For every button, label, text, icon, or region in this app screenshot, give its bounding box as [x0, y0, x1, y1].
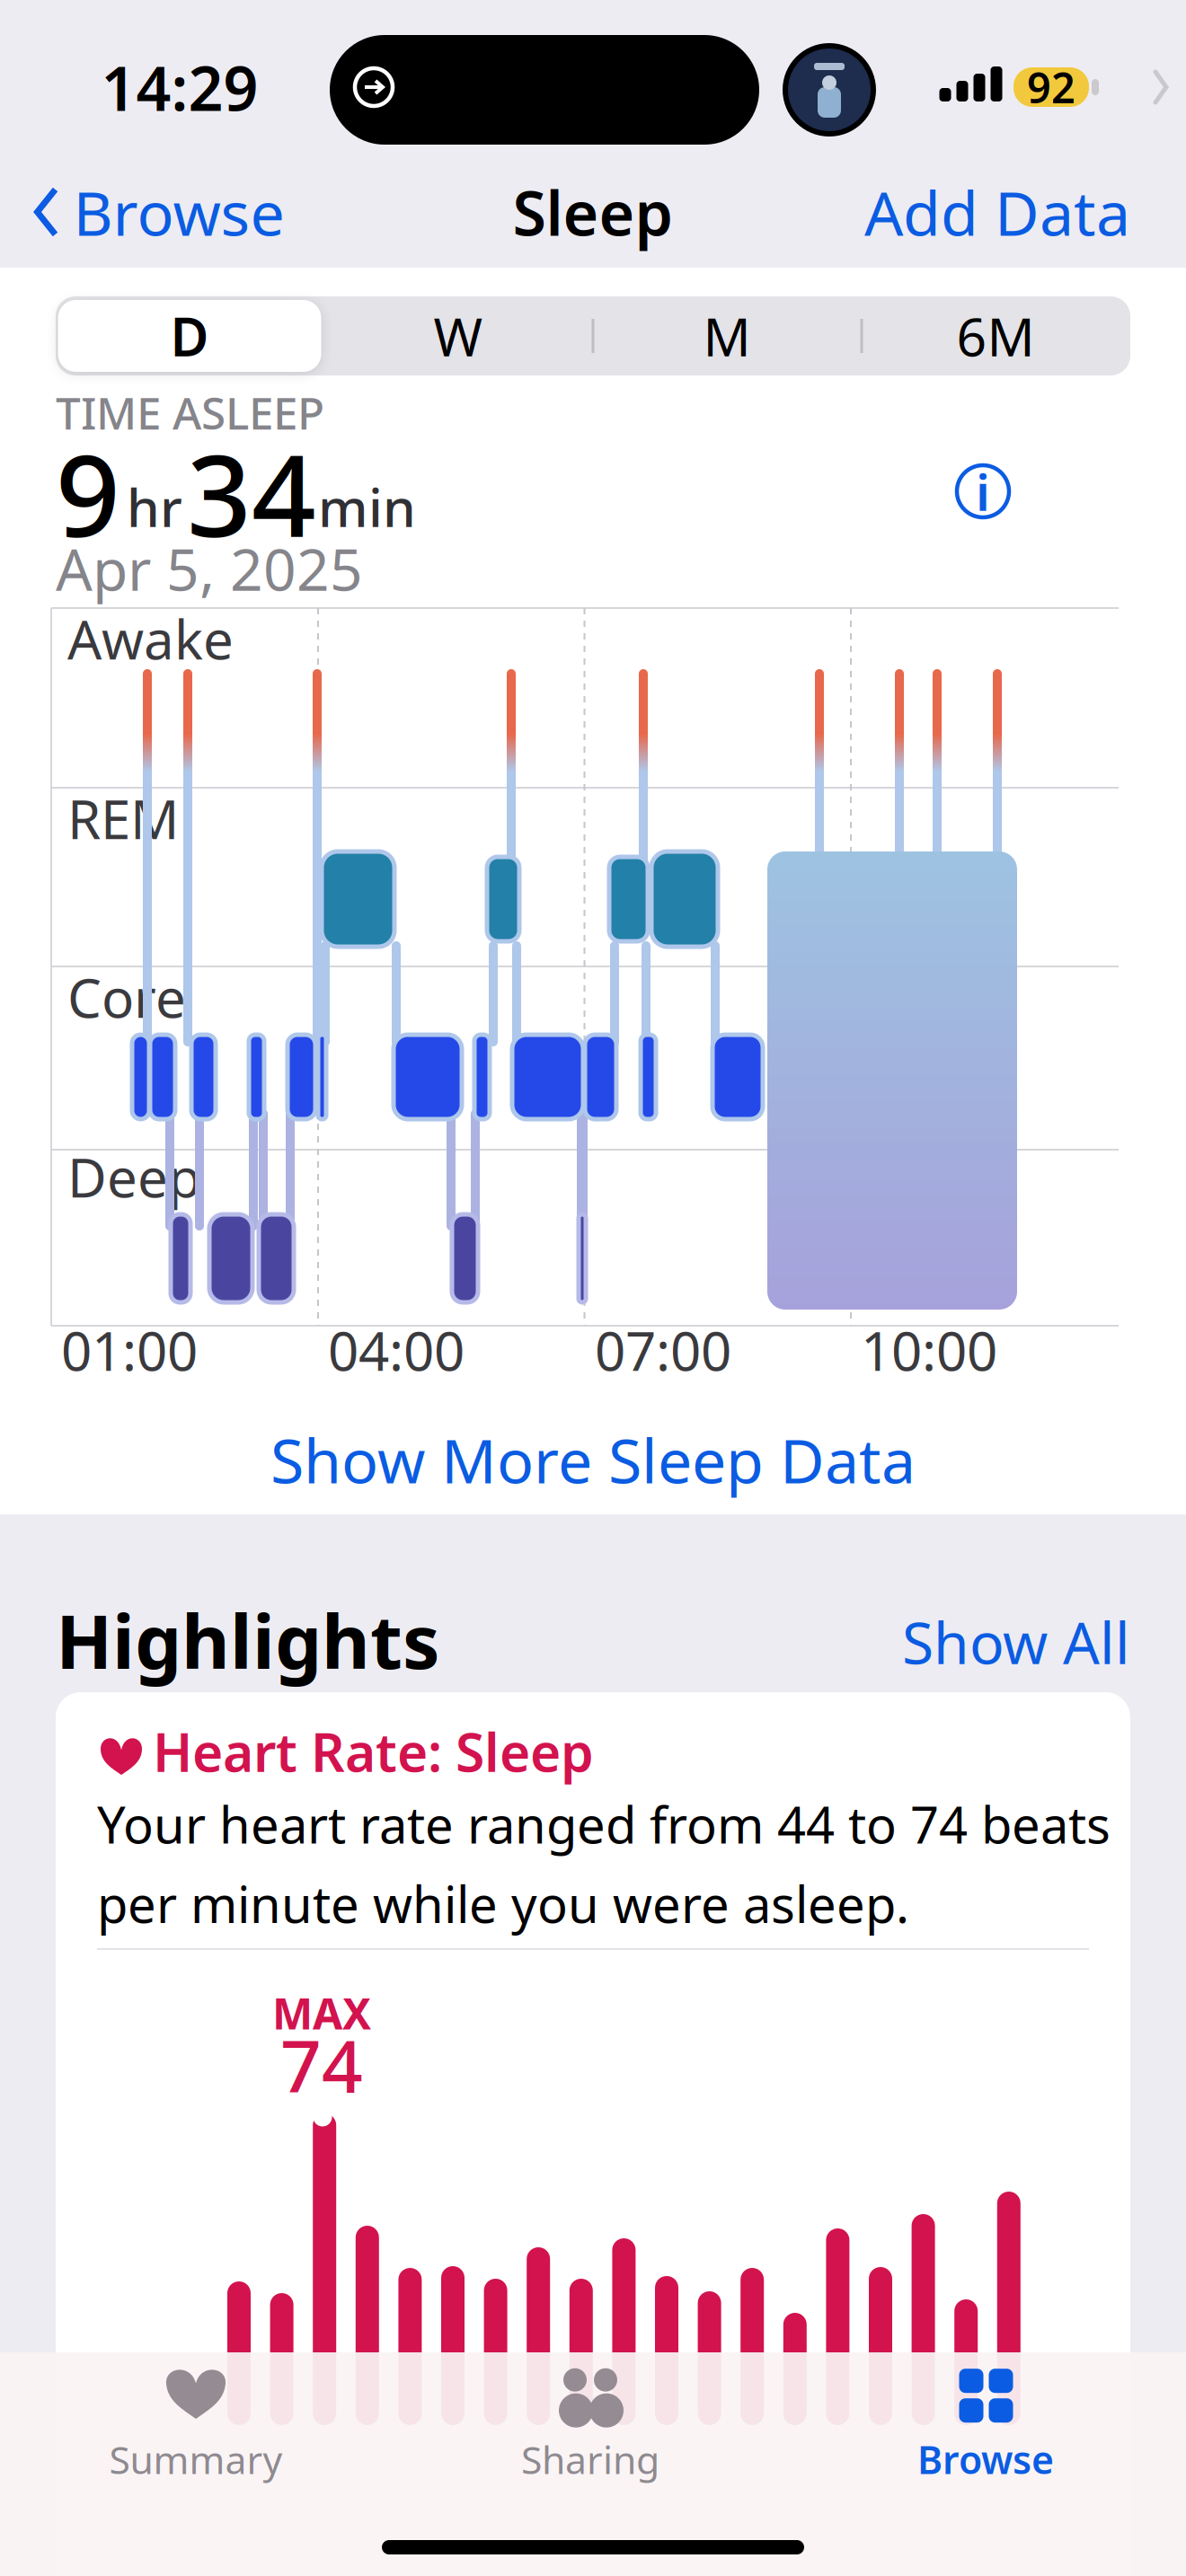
staticText: Show More Sleep Data: [270, 1419, 916, 1500]
button[interactable]: Summary: [109, 2366, 283, 2485]
staticText: W: [434, 301, 483, 371]
staticText: Sharing: [521, 2434, 659, 2485]
staticText: 10:00: [861, 1314, 997, 1386]
staticText: 6M: [956, 301, 1035, 371]
button[interactable]: M: [597, 300, 857, 372]
staticText: Awake: [67, 603, 234, 674]
staticText: 92: [1027, 59, 1075, 115]
staticText: Your heart rate ranged from 44 to 74 bea…: [97, 1791, 1111, 1937]
staticText: 07:00: [595, 1314, 731, 1386]
button[interactable]: Add Data: [771, 171, 1130, 252]
button[interactable]: 6M: [865, 300, 1126, 372]
staticText: 14:29: [101, 47, 258, 128]
staticText: Core: [67, 961, 186, 1033]
staticText: D: [170, 301, 209, 371]
button[interactable]: D: [58, 300, 321, 372]
staticText: 01:00: [61, 1314, 198, 1386]
button[interactable]: Show More Sleep Data: [162, 1424, 1024, 1495]
staticText: min: [318, 472, 416, 542]
button[interactable]: Browse: [32, 171, 284, 252]
staticText: Summary: [109, 2434, 283, 2485]
button[interactable]: Sharing: [521, 2366, 659, 2485]
button[interactable]: Heart Rate: Sleep: [56, 1692, 1130, 2576]
staticText: 9: [56, 418, 120, 568]
staticText: M: [703, 301, 751, 371]
button[interactable]: Show All: [861, 1604, 1130, 1680]
staticText: 74: [280, 2017, 363, 2113]
staticText: 04:00: [328, 1314, 465, 1386]
staticText: Heart Rate: Sleep: [153, 1716, 594, 1786]
button[interactable]: Browse: [917, 2366, 1054, 2485]
staticText: Browse: [917, 2434, 1054, 2485]
staticText: i: [976, 458, 990, 525]
staticText: MAX: [272, 1984, 371, 2041]
button[interactable]: W: [328, 300, 589, 372]
staticText: 34: [187, 418, 316, 568]
staticText: Apr 5, 2025: [56, 530, 363, 607]
staticText: Add Data: [864, 171, 1130, 252]
staticText: Deep: [67, 1141, 201, 1212]
staticText: Browse: [73, 171, 284, 252]
staticText: Sleep: [513, 171, 673, 252]
button[interactable]: i: [957, 458, 1009, 525]
staticText: hr: [127, 472, 182, 542]
staticText: REM: [67, 783, 179, 854]
staticText: Highlights: [56, 1591, 439, 1689]
staticText: Show All: [902, 1604, 1130, 1680]
staticText: TIME ASLEEP: [56, 383, 324, 442]
